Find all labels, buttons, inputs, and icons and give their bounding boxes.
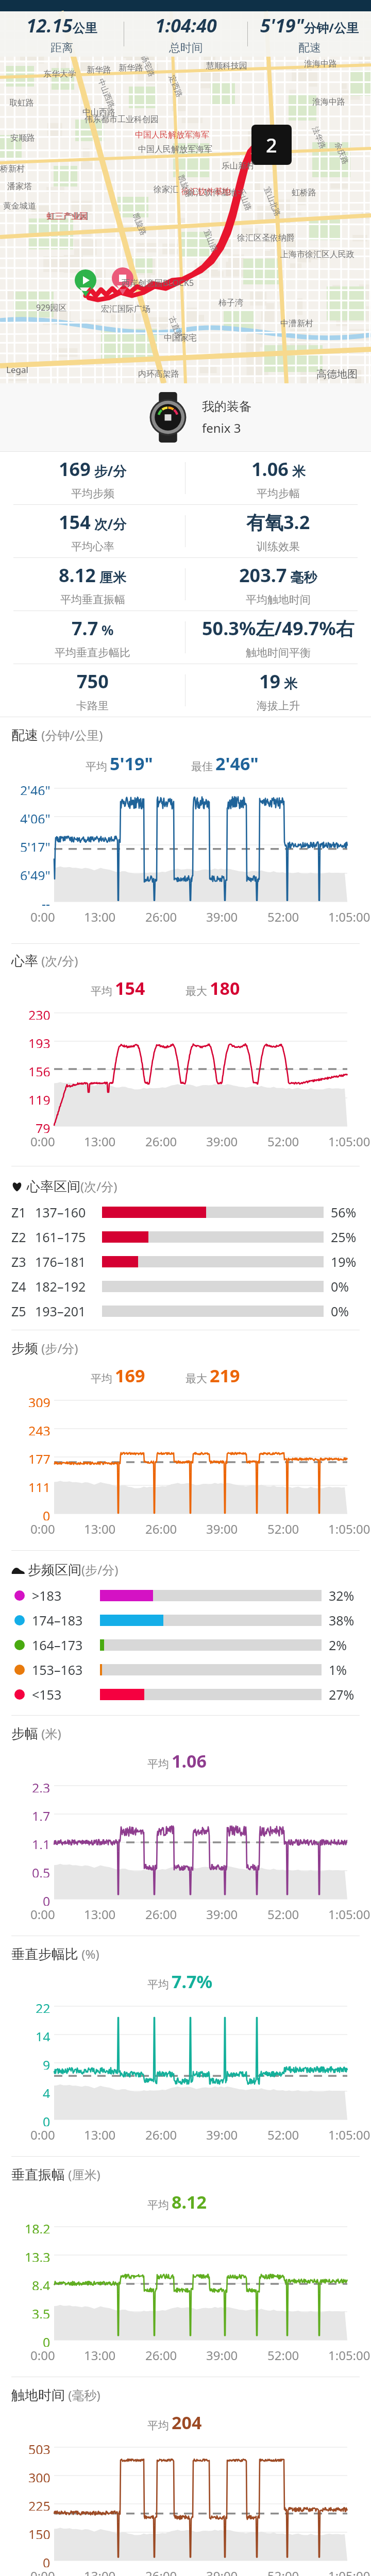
staticText: 39:00 xyxy=(206,908,238,925)
staticText: 0 xyxy=(43,2333,50,2347)
staticText: 0:00 xyxy=(30,1520,55,1537)
staticText: 52:00 xyxy=(267,1520,299,1537)
staticText: 中国家宅 xyxy=(164,333,197,343)
staticText: 52:00 xyxy=(267,908,299,925)
button[interactable]: 164–173 xyxy=(0,1633,371,1657)
staticText: 训练效果 xyxy=(257,540,300,553)
staticText: 4'06" xyxy=(20,810,50,823)
staticText: 39:00 xyxy=(206,2347,238,2364)
staticText: 154 次/分 xyxy=(59,510,127,535)
staticText: 海拔上升 xyxy=(257,699,300,713)
staticText: 伟东都市工业科创园 xyxy=(85,114,159,125)
staticText: 180 xyxy=(210,976,240,1000)
staticText: 18.2 xyxy=(25,2220,50,2233)
staticText: 119 xyxy=(28,1091,50,1105)
staticText: 153–163 xyxy=(32,1661,100,1679)
staticText: 154 xyxy=(115,976,145,1000)
staticText: 余庆路 xyxy=(333,141,350,166)
staticText: 垂直振幅 (厘米) xyxy=(11,2166,100,2183)
staticText: 淮海中路 xyxy=(312,97,345,107)
staticText: 最大 xyxy=(185,985,207,998)
staticText: >183 xyxy=(32,1587,100,1604)
staticText: 虹桥路 xyxy=(292,188,316,198)
staticText: 137–160 xyxy=(35,1204,102,1221)
staticText: 虹三产业园 xyxy=(46,211,88,222)
staticText: 26:00 xyxy=(145,1133,177,1150)
button[interactable]: Z4 xyxy=(0,1274,371,1299)
staticText: 164–173 xyxy=(32,1636,100,1654)
staticText: 安顺路 xyxy=(10,133,35,143)
staticText: 最佳 xyxy=(191,760,213,773)
staticText: 13:00 xyxy=(84,908,116,925)
staticText: 13:00 xyxy=(84,2126,116,2143)
staticText: 乐山路 xyxy=(236,187,253,212)
staticText: 52:00 xyxy=(267,1133,299,1150)
staticText: 潘家塔 xyxy=(7,181,32,192)
staticText: 13:00 xyxy=(84,1520,116,1537)
staticText: 243 xyxy=(28,1422,50,1435)
staticText: 19% xyxy=(331,1253,357,1270)
staticText: 平均垂直振幅 xyxy=(60,593,125,606)
staticText: -- xyxy=(42,895,50,908)
staticText: 8.12 xyxy=(172,2190,207,2214)
staticText: 5'19"分钟/公里 xyxy=(260,13,359,38)
staticText: 13:00 xyxy=(84,1133,116,1150)
staticText: 平均 xyxy=(147,2419,169,2432)
button[interactable]: Z3 xyxy=(0,1249,371,1274)
staticText: 1.7 xyxy=(32,1807,50,1821)
staticText: 0 xyxy=(43,2554,50,2567)
staticText: 8.12 厘米 xyxy=(59,563,126,588)
staticText: 2'46" xyxy=(215,752,259,775)
staticText: 上海市徐汇区人民政 xyxy=(280,249,355,260)
staticText: 38% xyxy=(329,1612,355,1629)
staticText: 2.3 xyxy=(32,1779,50,1792)
staticText: 929园区 xyxy=(36,302,67,313)
staticText: 桥新村 xyxy=(0,164,25,174)
button[interactable]: <153 xyxy=(0,1682,371,1707)
staticText: 虹三产业园 xyxy=(47,211,89,222)
button[interactable]: >183 xyxy=(0,1583,371,1608)
button[interactable]: Z5 xyxy=(0,1299,371,1324)
staticText: 古直路 xyxy=(167,315,184,340)
button[interactable]: 我的装备 xyxy=(0,383,371,451)
staticText: 宜山北路 xyxy=(262,186,282,218)
button[interactable]: 153–163 xyxy=(0,1657,371,1682)
staticText: 156 xyxy=(28,1063,50,1076)
staticText: 触地时间 (毫秒) xyxy=(11,2386,100,2403)
staticText: 26:00 xyxy=(145,2126,177,2143)
staticText: 193–201 xyxy=(35,1302,102,1320)
staticText: 0:00 xyxy=(30,1133,55,1150)
staticText: 5'19" xyxy=(110,752,153,775)
button[interactable]: 174–183 xyxy=(0,1608,371,1633)
staticText: 50.3%左/49.7%右 xyxy=(202,616,355,641)
staticText: 1:05:00 xyxy=(328,908,370,925)
staticText: 52:00 xyxy=(267,2126,299,2143)
staticText: 黄金城道 xyxy=(3,201,36,211)
staticText: 26:00 xyxy=(145,2567,177,2576)
staticText: 39:00 xyxy=(206,2567,238,2576)
staticText: 平均触地时间 xyxy=(246,593,311,606)
staticText: fenix 3 xyxy=(202,419,241,436)
staticText: 西岸创意园BLOCK5 xyxy=(122,277,194,289)
staticText: <153 xyxy=(32,1686,100,1703)
staticText: 169 xyxy=(115,1364,145,1387)
staticText: 0:00 xyxy=(30,2347,55,2364)
button[interactable]: Z2 xyxy=(0,1225,371,1249)
staticText: 4 xyxy=(43,2084,50,2098)
staticText: Z3 xyxy=(11,1253,35,1270)
staticText: 230 xyxy=(28,1006,50,1020)
staticText: 步频区间(步/分) xyxy=(28,1561,119,1578)
staticText: 平均 xyxy=(147,2198,169,2212)
staticText: 169 步/分 xyxy=(59,456,127,482)
button[interactable]: Z1 xyxy=(0,1200,371,1225)
staticText: 204 xyxy=(172,2411,202,2434)
staticText: 1.06 xyxy=(172,1749,207,1773)
staticText: 111 xyxy=(28,1479,50,1492)
staticText: 有氧3.2 xyxy=(246,510,310,535)
staticText: Z2 xyxy=(11,1228,35,1246)
staticText: 中山西路 xyxy=(96,77,117,110)
staticText: 平均步频 xyxy=(71,487,114,500)
staticText: 503 xyxy=(28,2441,50,2454)
staticText: 1:05:00 xyxy=(328,1133,370,1150)
staticText: 宏汇国际广场 xyxy=(101,304,150,314)
